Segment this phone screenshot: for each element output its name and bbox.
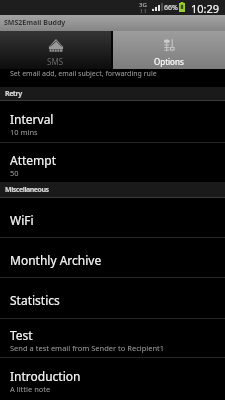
button[interactable]: Monthly Archive — [0, 238, 225, 277]
staticText: SMS — [47, 56, 64, 67]
staticText: Test — [10, 327, 33, 343]
staticText: 66% — [164, 3, 178, 13]
staticText: Retry — [5, 89, 22, 99]
button[interactable]: Attempt — [0, 143, 225, 182]
staticText: 10:29 — [191, 1, 220, 16]
button[interactable]: SMS — [0, 31, 111, 69]
staticText: 3G — [139, 1, 147, 9]
staticText: Options — [154, 56, 184, 67]
staticText: WiFi — [10, 212, 34, 228]
staticText: A little note — [10, 384, 51, 394]
staticText: Send a test email from Sender to Recipie… — [10, 343, 165, 353]
staticText: SMS2Email Buddy — [4, 18, 66, 28]
staticText: Miscellaneous — [5, 185, 49, 195]
staticText: 10 mins — [10, 127, 38, 137]
staticText: Interval — [10, 111, 54, 127]
button[interactable]: WiFi — [0, 198, 225, 237]
button[interactable]: Interval — [0, 101, 225, 142]
staticText: Monthly Archive — [10, 252, 102, 268]
button[interactable]: Test — [0, 319, 225, 357]
button[interactable]: Statistics — [0, 278, 225, 318]
button[interactable]: Options — [113, 31, 225, 69]
staticText: Statistics — [10, 292, 60, 308]
staticText: Attempt — [10, 152, 57, 168]
staticText: Introduction — [10, 368, 81, 384]
staticText: Set email add, email subject, forwarding… — [10, 69, 157, 79]
button[interactable]: Introduction — [0, 358, 225, 400]
staticText: 50 — [10, 168, 19, 178]
